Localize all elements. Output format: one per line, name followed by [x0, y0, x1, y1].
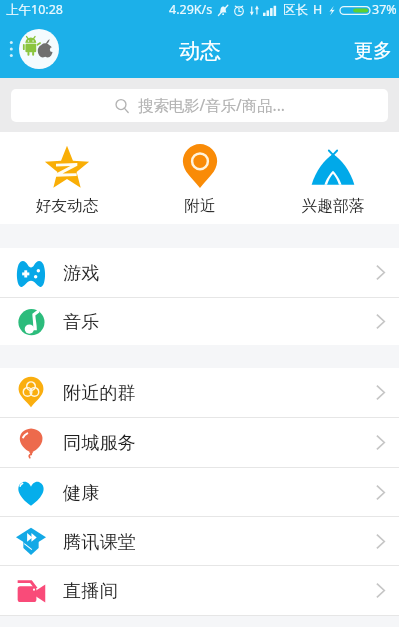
staticText: 附近	[184, 196, 216, 216]
staticText: 健康	[63, 481, 100, 504]
button[interactable]: 同城服务	[0, 418, 399, 467]
button[interactable]: 音乐	[0, 298, 399, 345]
button[interactable]: 直播间	[0, 566, 399, 615]
staticText: 上午10:28	[6, 1, 63, 18]
staticText: 腾讯课堂	[63, 530, 136, 553]
staticText: 4.29K/s	[169, 1, 213, 18]
button[interactable]: 兴趣部落	[266, 132, 399, 224]
staticText: 区长	[283, 2, 308, 18]
staticText: 搜索电影/音乐/商品...	[138, 95, 285, 116]
staticText: 直播间	[63, 579, 118, 602]
button[interactable]: 好友动态	[0, 132, 133, 224]
button[interactable]: 健康	[0, 468, 399, 516]
button[interactable]: 附近	[133, 132, 266, 224]
button[interactable]: 腾讯课堂	[0, 517, 399, 565]
staticText: 37%	[372, 1, 397, 18]
button[interactable]: 附近的群	[0, 368, 399, 417]
staticText: 更多	[354, 39, 392, 63]
button[interactable]: Profile	[0, 29, 59, 69]
staticText: H	[313, 1, 323, 18]
staticText: 音乐	[63, 310, 100, 333]
button[interactable]: 游戏	[0, 248, 399, 297]
button[interactable]: 搜索电影/音乐/商品...	[11, 89, 388, 122]
staticText: 动态	[179, 38, 221, 64]
button[interactable]: 更多	[344, 27, 399, 71]
staticText: 附近的群	[63, 381, 136, 404]
staticText: 好友动态	[35, 196, 99, 216]
staticText: 同城服务	[63, 431, 136, 454]
staticText: 游戏	[63, 261, 100, 284]
staticText: 兴趣部落	[301, 196, 365, 216]
